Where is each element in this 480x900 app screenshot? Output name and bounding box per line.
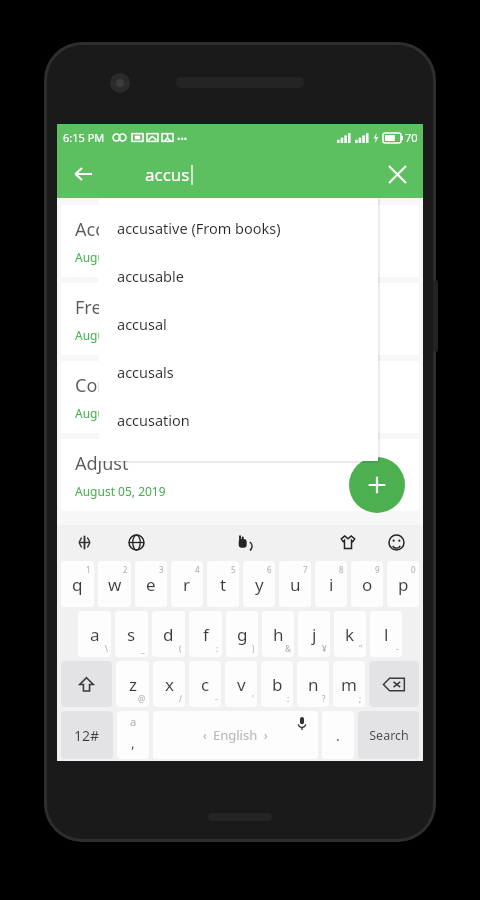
button[interactable]: a — [117, 711, 149, 759]
button[interactable]: i — [315, 561, 347, 607]
staticText: x — [165, 673, 174, 696]
staticText: August 08, 2019 — [75, 405, 166, 421]
staticText: 7 — [303, 564, 308, 575]
staticText: c — [201, 673, 210, 696]
staticText: a — [130, 714, 137, 729]
button[interactable]: b — [261, 661, 293, 707]
staticText: ¥ — [322, 643, 327, 654]
button[interactable]: Add word — [349, 457, 405, 513]
button[interactable]: Change language — [123, 529, 149, 555]
staticText: j — [312, 623, 317, 646]
staticText: d — [163, 623, 174, 646]
staticText: ‹ — [203, 727, 207, 743]
button[interactable]: f — [189, 611, 222, 657]
staticText: \ — [105, 643, 108, 654]
staticText: " — [359, 643, 363, 654]
button[interactable]: y — [243, 561, 275, 607]
button[interactable]: c — [189, 661, 221, 707]
button[interactable]: accusable — [99, 252, 378, 300]
button[interactable]: Backspace — [369, 661, 419, 707]
button[interactable]: a — [78, 611, 111, 657]
button[interactable]: m — [333, 661, 365, 707]
button[interactable]: g — [226, 611, 258, 657]
staticText: r — [183, 573, 191, 596]
button[interactable]: accusative (From books) — [99, 204, 378, 252]
button[interactable]: d — [152, 611, 185, 657]
staticText: 6 — [267, 564, 272, 575]
button[interactable]: accusation — [99, 396, 378, 444]
button[interactable]: Emoji — [383, 529, 409, 555]
button[interactable]: o — [351, 561, 383, 607]
staticText: accusative (From books) — [117, 218, 281, 238]
staticText: o — [362, 573, 373, 596]
button[interactable]: l — [370, 611, 402, 657]
staticText: 70 — [405, 130, 418, 145]
staticText: v — [237, 673, 246, 696]
staticText: Accusative — [75, 217, 165, 242]
button[interactable]: Shift — [61, 661, 112, 707]
button[interactable]: w — [98, 561, 131, 607]
button[interactable]: u — [279, 561, 311, 607]
staticText: s — [127, 623, 136, 646]
staticText: a — [90, 623, 100, 646]
button[interactable]: r — [171, 561, 203, 607]
button[interactable]: Accusative — [61, 205, 419, 277]
button[interactable]: 12# — [61, 711, 113, 759]
staticText: z — [129, 673, 137, 696]
staticText: ) — [252, 643, 255, 654]
button[interactable]: q — [61, 561, 94, 607]
button[interactable]: . — [322, 711, 354, 759]
button[interactable]: z — [116, 661, 149, 707]
staticText: August 10, 2019 — [75, 327, 166, 343]
button[interactable]: Theme — [335, 529, 361, 555]
staticText: k — [345, 623, 355, 646]
staticText: 9 — [375, 564, 380, 575]
staticText: t — [220, 573, 227, 596]
button[interactable]: j — [298, 611, 330, 657]
button[interactable]: Confess — [61, 361, 419, 433]
button[interactable]: French — [61, 283, 419, 355]
staticText: w — [108, 573, 122, 596]
staticText: g — [237, 623, 248, 646]
staticText: m — [341, 673, 357, 696]
staticText: : — [287, 693, 290, 704]
button[interactable]: accusals — [99, 348, 378, 396]
staticText: ••• — [177, 132, 188, 144]
staticText: Search — [369, 727, 409, 744]
button[interactable]: Back — [63, 154, 103, 194]
button[interactable]: v — [225, 661, 257, 707]
staticText: 4 — [195, 564, 200, 575]
staticText: 5 — [231, 564, 236, 575]
staticText: n — [308, 673, 319, 696]
staticText: 6:15 PM — [63, 130, 105, 145]
button[interactable]: Space — [153, 711, 318, 759]
staticText: accus — [145, 163, 190, 186]
button[interactable]: p — [387, 561, 419, 607]
button[interactable]: s — [115, 611, 148, 657]
button[interactable]: e — [135, 561, 167, 607]
button[interactable]: n — [297, 661, 329, 707]
staticText: f — [203, 623, 209, 646]
button[interactable]: h — [262, 611, 294, 657]
staticText: August 05, 2019 — [75, 483, 166, 499]
button[interactable]: Handwriting — [229, 529, 255, 555]
staticText: Confess — [75, 373, 142, 398]
button[interactable]: x — [153, 661, 185, 707]
staticText: y — [255, 573, 264, 596]
staticText: August 12, 2019 — [75, 249, 166, 265]
button[interactable]: t — [207, 561, 239, 607]
staticText: l — [384, 623, 389, 646]
button[interactable]: Cursor control — [71, 529, 97, 555]
staticText: ( — [179, 643, 182, 654]
staticText: _ — [141, 643, 145, 654]
button[interactable]: Clear search — [377, 154, 417, 194]
button[interactable]: k — [334, 611, 366, 657]
button[interactable]: Adjust — [61, 439, 419, 511]
button[interactable]: Search — [358, 711, 419, 759]
staticText: 3 — [159, 564, 164, 575]
staticText: accusable — [117, 266, 184, 286]
button[interactable]: accusal — [99, 300, 378, 348]
staticText: accusals — [117, 362, 174, 382]
staticText: 8 — [339, 564, 344, 575]
staticText: u — [290, 573, 301, 596]
